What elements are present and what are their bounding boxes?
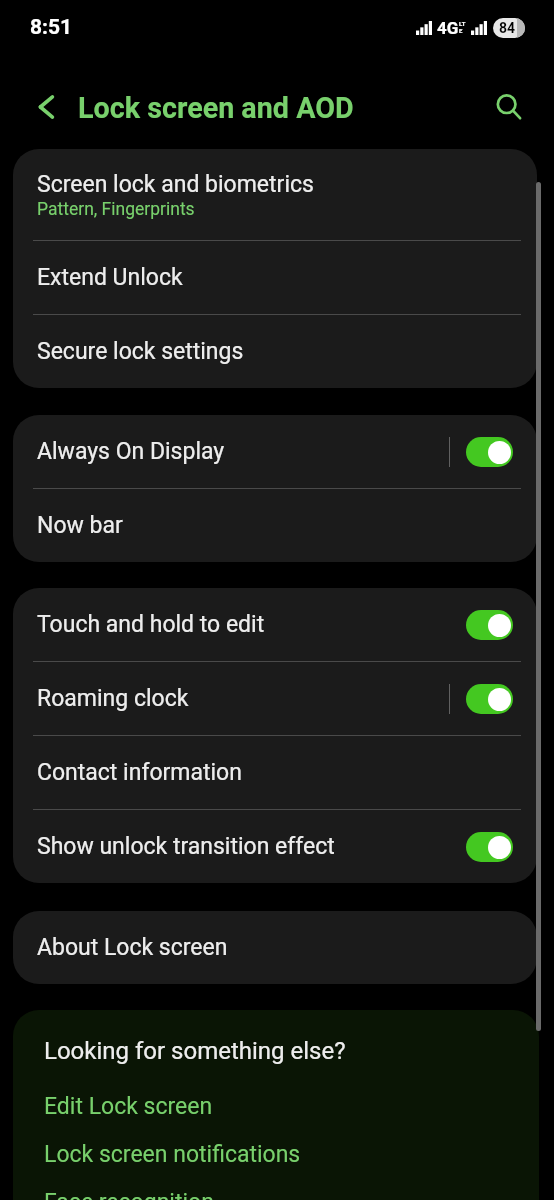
button[interactable]: Toggle Roaming clock (466, 684, 513, 714)
staticText: Screen lock and biometrics (37, 171, 314, 198)
staticText: 4G (437, 18, 459, 38)
button[interactable]: Edit Lock screen (44, 1093, 213, 1120)
button[interactable]: Toggle Always On Display (466, 437, 513, 467)
button[interactable]: Toggle Show unlock transition effect (466, 832, 513, 862)
staticText: Now bar (37, 512, 123, 539)
button[interactable]: Screen lock and biometrics (13, 149, 537, 240)
staticText: Secure lock settings (37, 338, 244, 365)
button[interactable]: Face recognition (44, 1189, 214, 1200)
staticText: Roaming clock (37, 685, 189, 712)
staticText: 84 (499, 20, 516, 36)
button[interactable]: Contact information (13, 736, 537, 809)
staticText: Looking for something else? (44, 1037, 346, 1065)
button[interactable]: Extend Unlock (13, 241, 537, 314)
button[interactable]: Roaming clock (13, 662, 537, 735)
staticText: Lock screen and AOD (78, 91, 354, 125)
button[interactable]: Toggle Touch and hold to edit (466, 610, 513, 640)
staticText: Show unlock transition effect (37, 833, 335, 860)
button[interactable]: Show unlock transition effect (13, 810, 537, 883)
staticText: E (459, 27, 463, 34)
button[interactable]: Secure lock settings (13, 315, 537, 388)
staticText: About Lock screen (37, 934, 228, 961)
button[interactable]: Search (488, 85, 532, 129)
button[interactable]: About Lock screen (13, 911, 537, 984)
button[interactable]: Touch and hold to edit (13, 588, 537, 661)
staticText: Pattern, Fingerprints (37, 199, 195, 220)
button[interactable]: Back (24, 85, 68, 129)
button[interactable]: Lock screen notifications (44, 1141, 301, 1168)
staticText: Touch and hold to edit (37, 611, 265, 638)
button[interactable]: Always On Display (13, 415, 537, 488)
button[interactable]: Now bar (13, 489, 537, 562)
staticText: LT (459, 20, 466, 27)
staticText: Contact information (37, 759, 242, 786)
staticText: 8:51 (30, 15, 73, 40)
staticText: Always On Display (37, 438, 225, 465)
staticText: Extend Unlock (37, 264, 183, 291)
